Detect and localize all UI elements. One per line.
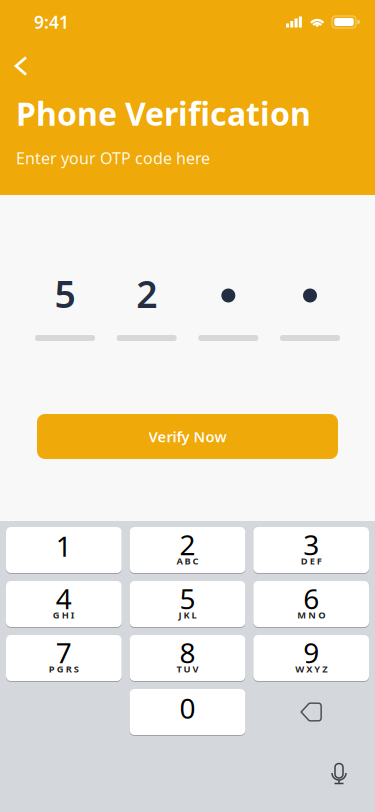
staticText: 5 xyxy=(54,269,75,318)
staticText: G H I xyxy=(53,609,75,621)
staticText: 7 xyxy=(56,634,72,671)
staticText: D E F xyxy=(301,555,322,567)
staticText: 5 xyxy=(179,580,195,617)
staticText: W X Y Z xyxy=(295,663,327,675)
staticText: 2 xyxy=(136,269,157,318)
staticText: 8 xyxy=(179,634,195,671)
button[interactable]: 6 xyxy=(253,581,369,627)
staticText: 4 xyxy=(56,580,72,617)
button[interactable]: Dictate xyxy=(330,762,348,785)
button[interactable]: 2 xyxy=(130,527,245,573)
staticText: Phone Verification xyxy=(16,92,311,134)
staticText: 9 xyxy=(303,634,319,671)
staticText: 1 xyxy=(56,527,72,565)
staticText: Verify Now xyxy=(148,427,226,446)
button[interactable]: Verify Now xyxy=(37,414,338,459)
button[interactable]: 0 xyxy=(130,689,245,735)
button[interactable]: 3 xyxy=(253,527,369,573)
button[interactable]: Delete xyxy=(253,689,369,735)
staticText: 3 xyxy=(303,526,319,563)
button[interactable]: Back xyxy=(0,49,42,83)
staticText: 0 xyxy=(179,689,195,727)
button[interactable]: 8 xyxy=(130,635,245,681)
staticText: T U V xyxy=(176,663,198,675)
staticText: P G R S xyxy=(49,663,79,675)
button[interactable]: 9 xyxy=(253,635,369,681)
button[interactable]: 5 xyxy=(130,581,245,627)
button[interactable]: 4 xyxy=(6,581,122,627)
staticText: 6 xyxy=(303,580,319,617)
staticText: M N O xyxy=(297,609,325,621)
staticText: 9:41 xyxy=(34,10,69,33)
staticText: Enter your OTP code here xyxy=(16,147,210,169)
button[interactable]: 7 xyxy=(6,635,122,681)
staticText: 2 xyxy=(179,526,195,563)
staticText: J K L xyxy=(178,609,196,621)
staticText: A B C xyxy=(176,555,198,567)
button[interactable]: 1 xyxy=(6,527,122,573)
